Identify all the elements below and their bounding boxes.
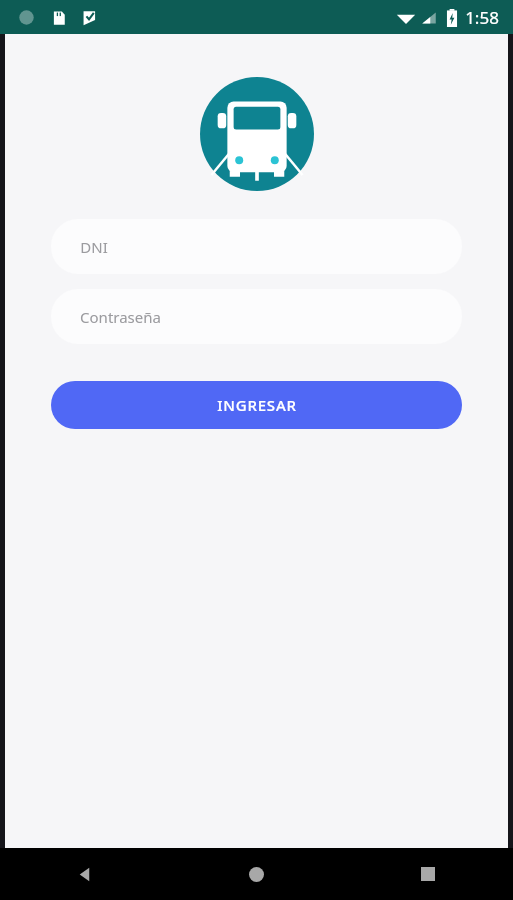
button[interactable]: Back — [0, 848, 171, 900]
button[interactable]: DNI — [51, 219, 462, 274]
staticText: Contraseña — [80, 307, 161, 327]
button[interactable]: INGRESAR — [51, 381, 462, 429]
staticText: 1:58 — [465, 6, 499, 29]
staticText: DNI — [80, 237, 108, 257]
staticText: INGRESAR — [217, 395, 297, 415]
button[interactable]: Recent apps — [342, 848, 513, 900]
button[interactable]: Contraseña — [51, 289, 462, 344]
button[interactable]: Home — [171, 848, 342, 900]
